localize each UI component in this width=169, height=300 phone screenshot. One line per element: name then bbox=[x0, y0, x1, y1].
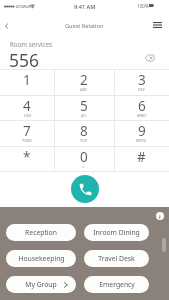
staticText: Housekeeping bbox=[18, 254, 65, 263]
staticText: Emergency bbox=[99, 280, 135, 289]
button[interactable]: 4 bbox=[0, 95, 54, 121]
button[interactable]: # bbox=[114, 146, 169, 172]
staticText: ABC bbox=[80, 87, 88, 92]
staticText: JKL bbox=[81, 113, 87, 118]
button[interactable]: 8 bbox=[54, 120, 113, 146]
staticText: 5 bbox=[80, 97, 88, 115]
button[interactable]: 1 bbox=[0, 69, 54, 95]
button[interactable]: Emergency bbox=[84, 276, 149, 293]
staticText: Room services bbox=[10, 40, 52, 48]
staticText: DEF bbox=[138, 87, 145, 92]
button[interactable]: 9 bbox=[114, 120, 169, 146]
button[interactable]: Inroom Dining bbox=[84, 224, 149, 241]
button[interactable]: 3 bbox=[114, 69, 169, 95]
staticText: Travel Desk bbox=[98, 254, 135, 263]
staticText: TUV bbox=[80, 138, 88, 143]
staticText: 9 bbox=[138, 122, 146, 140]
button[interactable]: Housekeeping bbox=[6, 250, 76, 267]
button[interactable]: Back bbox=[0, 16, 12, 33]
staticText: 0 bbox=[80, 148, 88, 166]
staticText: 8 bbox=[80, 122, 88, 140]
staticText: 556 bbox=[9, 48, 40, 72]
staticText: 7 bbox=[23, 122, 31, 140]
button[interactable]: Call bbox=[71, 175, 99, 203]
button[interactable]: 5 bbox=[54, 95, 113, 121]
button[interactable]: Backspace bbox=[139, 50, 159, 66]
staticText: MNO bbox=[137, 113, 147, 118]
staticText: 3 bbox=[138, 71, 146, 89]
staticText: WXYZ bbox=[136, 138, 147, 143]
button[interactable]: My Group bbox=[6, 276, 76, 293]
button[interactable]: 0 bbox=[54, 146, 113, 172]
button[interactable]: 7 bbox=[0, 120, 54, 146]
staticText: Inroom Dining bbox=[93, 228, 140, 237]
staticText: PQRS bbox=[22, 138, 32, 143]
button[interactable]: Info bbox=[156, 212, 164, 220]
staticText: 6 bbox=[138, 97, 146, 115]
staticText: arowana bbox=[16, 3, 34, 9]
staticText: GHI bbox=[24, 113, 31, 118]
staticText: i bbox=[159, 213, 161, 220]
staticText: Reception bbox=[25, 228, 57, 237]
button[interactable]: Menu bbox=[148, 16, 169, 33]
staticText: + bbox=[82, 164, 85, 169]
staticText: 100% bbox=[137, 3, 149, 9]
button[interactable]: 2 bbox=[54, 69, 113, 95]
staticText: * bbox=[23, 148, 31, 166]
staticText: Guest Relation bbox=[65, 22, 104, 30]
button[interactable]: 6 bbox=[114, 95, 169, 121]
button[interactable]: Reception bbox=[6, 224, 76, 241]
staticText: 9:41 AM bbox=[74, 3, 96, 11]
staticText: 1 bbox=[23, 71, 31, 89]
staticText: # bbox=[137, 148, 146, 166]
staticText: My Group bbox=[25, 280, 57, 289]
button[interactable]: * bbox=[0, 146, 54, 172]
staticText: 4 bbox=[23, 97, 31, 115]
staticText: 2 bbox=[80, 71, 88, 89]
button[interactable]: Travel Desk bbox=[84, 250, 149, 267]
